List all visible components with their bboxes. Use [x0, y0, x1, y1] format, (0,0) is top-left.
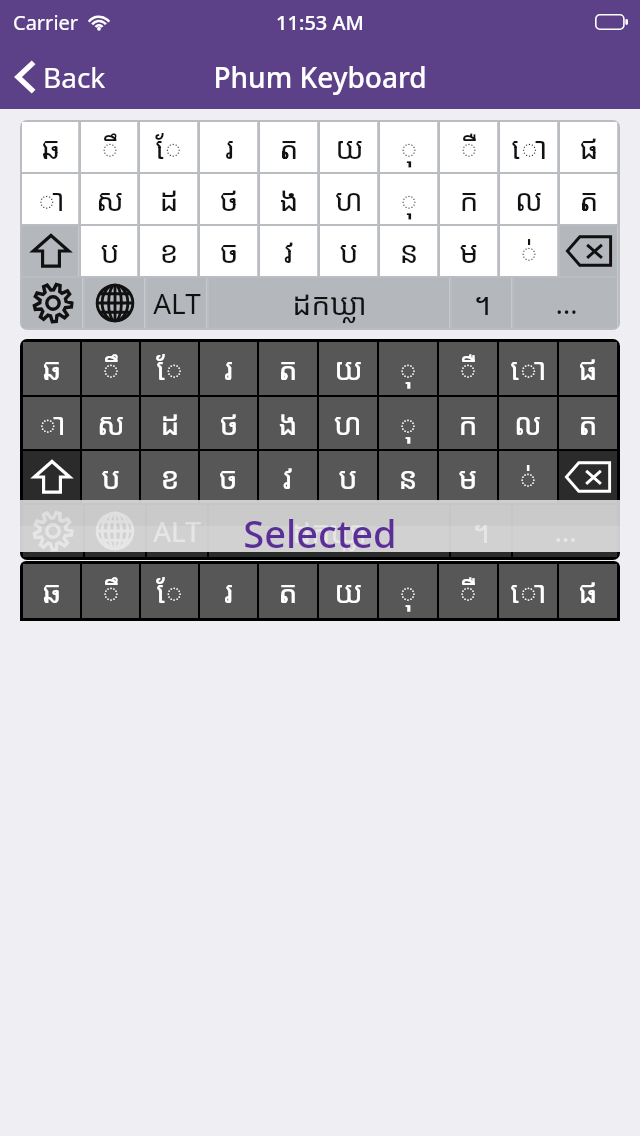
- button[interactable]: រ: [200, 342, 257, 395]
- staticText: ច: [220, 231, 239, 272]
- button[interactable]: ហ: [320, 174, 378, 224]
- button[interactable]: ខ: [140, 226, 198, 276]
- button[interactable]: ោ: [499, 342, 557, 395]
- button[interactable]: ត: [259, 342, 317, 395]
- button[interactable]: ា: [23, 397, 80, 449]
- staticText: យ: [334, 571, 363, 612]
- button[interactable]: ផ: [559, 564, 617, 618]
- button[interactable]: ុ: [380, 174, 438, 224]
- button[interactable]: រ: [200, 122, 258, 172]
- button[interactable]: ែ: [141, 564, 198, 618]
- button[interactable]: ដ: [140, 174, 198, 224]
- button[interactable]: ែ: [140, 122, 198, 172]
- button[interactable]: ឹ: [82, 564, 139, 618]
- button[interactable]: ឹ: [82, 342, 139, 395]
- button[interactable]: ឆ: [23, 342, 80, 395]
- button[interactable]: ឺ: [439, 564, 497, 618]
- staticText: ថ: [219, 403, 239, 444]
- button[interactable]: ុ: [379, 564, 437, 618]
- button[interactable]: ោ: [500, 122, 558, 172]
- staticText: ឆ: [42, 348, 62, 389]
- button[interactable]: ង: [260, 174, 318, 224]
- button[interactable]: ប: [319, 451, 377, 503]
- button[interactable]: ។: [451, 505, 511, 557]
- staticText: ហ: [334, 403, 362, 444]
- button[interactable]: ALT: [147, 505, 207, 557]
- staticText: ោ: [510, 571, 547, 612]
- button[interactable]: ក: [439, 397, 497, 449]
- button[interactable]: វ: [260, 226, 318, 276]
- staticText: ត: [578, 403, 598, 444]
- button[interactable]: ឆ: [20, 561, 620, 621]
- button[interactable]: ល: [499, 397, 557, 449]
- button[interactable]: យ: [319, 342, 377, 395]
- staticText: ់: [518, 457, 538, 498]
- button[interactable]: ម: [439, 451, 497, 503]
- button[interactable]: ។: [452, 278, 512, 328]
- button[interactable]: ប: [81, 226, 138, 276]
- button[interactable]: ដ: [141, 397, 198, 449]
- button[interactable]: ឹ: [81, 122, 138, 172]
- button[interactable]: ថ: [200, 174, 258, 224]
- button[interactable]: ់: [500, 226, 558, 276]
- button[interactable]: ត: [559, 397, 617, 449]
- button[interactable]: ់: [499, 451, 557, 503]
- button[interactable]: ត: [260, 122, 318, 172]
- button[interactable]: ា: [22, 174, 79, 224]
- button[interactable]: ក: [440, 174, 498, 224]
- button[interactable]: ែ: [141, 342, 198, 395]
- button[interactable]: ដកឃ្លា: [209, 278, 450, 328]
- button[interactable]: Backspace: [559, 451, 617, 503]
- button[interactable]: វ: [259, 451, 317, 503]
- button[interactable]: ុ: [379, 342, 437, 395]
- button[interactable]: ផ: [559, 342, 617, 395]
- button[interactable]: ច: [200, 451, 257, 503]
- button[interactable]: ប: [320, 226, 378, 276]
- button[interactable]: Settings: [22, 278, 83, 328]
- button[interactable]: ល: [500, 174, 558, 224]
- button[interactable]: …: [513, 505, 617, 557]
- button[interactable]: Shift: [22, 226, 79, 276]
- button[interactable]: ឺ: [440, 122, 498, 172]
- button[interactable]: ផ: [560, 122, 618, 172]
- button[interactable]: ស: [81, 174, 138, 224]
- button[interactable]: ុ: [379, 397, 437, 449]
- button[interactable]: ALT: [147, 278, 207, 328]
- button[interactable]: Change language: [85, 505, 145, 557]
- button[interactable]: ឆ: [20, 339, 620, 560]
- button[interactable]: ហ: [319, 397, 377, 449]
- button[interactable]: ប: [82, 451, 139, 503]
- button[interactable]: ថ: [200, 397, 257, 449]
- button[interactable]: យ: [320, 122, 378, 172]
- button[interactable]: ខ: [141, 451, 198, 503]
- button[interactable]: ឆ: [23, 564, 80, 618]
- button[interactable]: Settings: [23, 505, 83, 557]
- button[interactable]: ស: [82, 397, 139, 449]
- button[interactable]: Backspace: [560, 226, 618, 276]
- staticText: ម: [458, 457, 478, 498]
- staticText: ដ: [159, 179, 179, 220]
- staticText: ត: [278, 571, 298, 612]
- button[interactable]: ន: [379, 451, 437, 503]
- button[interactable]: ុ: [380, 122, 438, 172]
- button[interactable]: ឺ: [439, 342, 497, 395]
- button[interactable]: ត: [259, 564, 317, 618]
- button[interactable]: ឆ: [22, 122, 79, 172]
- button[interactable]: ត: [560, 174, 618, 224]
- button[interactable]: ង: [259, 397, 317, 449]
- button[interactable]: Shift: [23, 451, 80, 503]
- button[interactable]: ច: [200, 226, 258, 276]
- button[interactable]: ដកឃ្លា: [209, 505, 449, 557]
- staticText: ់: [519, 231, 539, 272]
- button[interactable]: យ: [319, 564, 377, 618]
- staticText: ផ: [578, 571, 598, 612]
- staticText: ប: [101, 457, 121, 498]
- button[interactable]: ោ: [499, 564, 557, 618]
- button[interactable]: Back: [8, 54, 114, 100]
- button[interactable]: ម: [440, 226, 498, 276]
- button[interactable]: ន: [380, 226, 438, 276]
- button[interactable]: Change language: [85, 278, 145, 328]
- button[interactable]: …: [514, 278, 618, 328]
- button[interactable]: រ: [200, 564, 257, 618]
- button[interactable]: ឆ: [20, 120, 620, 330]
